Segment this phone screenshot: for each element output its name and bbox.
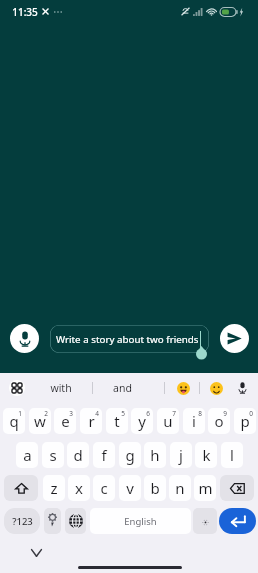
staticText: r [88, 411, 95, 431]
staticText: 7 [172, 409, 176, 418]
staticText: y [138, 411, 146, 431]
staticText: 8 [198, 409, 202, 418]
button[interactable]: f [93, 442, 115, 468]
staticText: 2 [44, 409, 48, 418]
button[interactable]: Send [220, 324, 249, 353]
button[interactable]: m [194, 475, 216, 501]
button[interactable]: q [3, 408, 25, 434]
button[interactable]: y [131, 408, 153, 434]
button[interactable]: Voice input [10, 324, 39, 353]
button[interactable]: English [90, 508, 191, 534]
staticText: z [50, 478, 58, 498]
button[interactable]: g [119, 442, 141, 468]
button[interactable]: Settings [44, 508, 61, 534]
button[interactable]: t [106, 408, 128, 434]
staticText: g [125, 445, 135, 465]
staticText: j [179, 445, 183, 465]
staticText: s [49, 445, 57, 465]
staticText: 4 [95, 409, 99, 418]
staticText: q [9, 411, 19, 431]
staticText: l [230, 445, 234, 465]
button[interactable]: with [30, 373, 91, 403]
staticText: d [73, 445, 83, 465]
button[interactable]: x [68, 475, 90, 501]
staticText: 1 [18, 409, 22, 418]
button[interactable]: Shift [4, 475, 38, 501]
staticText: English [124, 515, 157, 528]
button[interactable]: Backspace [220, 475, 254, 501]
button[interactable]: v [119, 475, 141, 501]
staticText: p [240, 411, 250, 431]
button[interactable]: s [42, 442, 64, 468]
button[interactable]: z [43, 475, 65, 501]
button[interactable]: ?123 [4, 508, 40, 534]
button[interactable]: and [93, 373, 152, 403]
staticText: 11:35 [12, 5, 38, 19]
staticText: n [175, 478, 185, 498]
staticText: 5 [121, 409, 125, 418]
button[interactable]: u [157, 408, 179, 434]
button[interactable]: w [29, 408, 51, 434]
staticText: with [50, 381, 72, 395]
button[interactable]: n [169, 475, 191, 501]
staticText: u [163, 411, 173, 431]
button[interactable]: p [234, 408, 256, 434]
button[interactable]: Change language [65, 508, 86, 534]
button[interactable]: Write a story about two friends [50, 325, 209, 353]
button[interactable]: b [144, 475, 166, 501]
staticText: f [101, 445, 107, 465]
staticText: ?123 [12, 515, 33, 528]
button[interactable]: o [208, 408, 230, 434]
button[interactable]: Emoji smile [203, 373, 229, 403]
staticText: w [34, 411, 46, 431]
button[interactable]: Hide keyboard [26, 542, 47, 563]
button[interactable]: c [93, 475, 115, 501]
staticText: 3 [69, 409, 73, 418]
staticText: Write a story about two friends [56, 333, 199, 346]
staticText: t [114, 411, 120, 431]
button[interactable]: h [144, 442, 166, 468]
staticText: b [150, 478, 160, 498]
button[interactable]: e [54, 408, 76, 434]
staticText: i [192, 411, 196, 431]
button[interactable]: Enter [219, 508, 256, 534]
staticText: c [100, 478, 108, 498]
staticText: e [61, 411, 70, 431]
staticText: m [198, 478, 213, 498]
staticText: and [113, 381, 132, 395]
button[interactable]: r [80, 408, 102, 434]
button[interactable]: Toolbar [9, 380, 25, 396]
staticText: 0 [249, 409, 253, 418]
staticText: 9 [223, 409, 227, 418]
button[interactable]: Emoji heart eyes [170, 373, 196, 403]
button[interactable]: l [221, 442, 243, 468]
button[interactable]: j [170, 442, 192, 468]
button[interactable]: d [67, 442, 89, 468]
button[interactable] [193, 508, 217, 534]
button[interactable]: k [195, 442, 217, 468]
staticText: o [214, 411, 224, 431]
button[interactable]: i [183, 408, 205, 434]
staticText: 6 [146, 409, 150, 418]
staticText: x [75, 478, 83, 498]
staticText: v [126, 478, 134, 498]
staticText: k [202, 445, 211, 465]
button[interactable]: a [16, 442, 38, 468]
staticText: h [150, 445, 160, 465]
staticText: a [23, 445, 32, 465]
button[interactable]: Voice typing [232, 373, 253, 403]
